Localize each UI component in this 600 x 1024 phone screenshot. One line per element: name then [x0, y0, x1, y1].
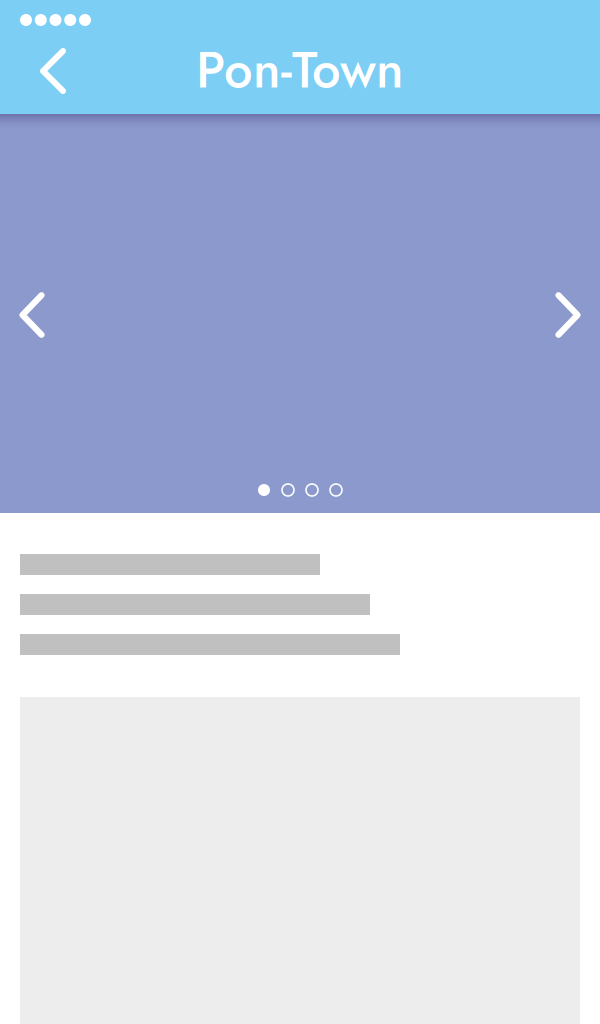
button[interactable]: Page 3 — [300, 478, 324, 502]
staticText: Pon-Town — [196, 33, 404, 107]
button[interactable]: Page 1 — [252, 478, 276, 502]
button[interactable]: Page 4 — [324, 478, 348, 502]
button[interactable]: Previous — [0, 265, 64, 361]
button[interactable]: Page 2 — [276, 478, 300, 502]
button[interactable]: Back — [0, 40, 74, 114]
button[interactable]: Next — [536, 265, 600, 361]
